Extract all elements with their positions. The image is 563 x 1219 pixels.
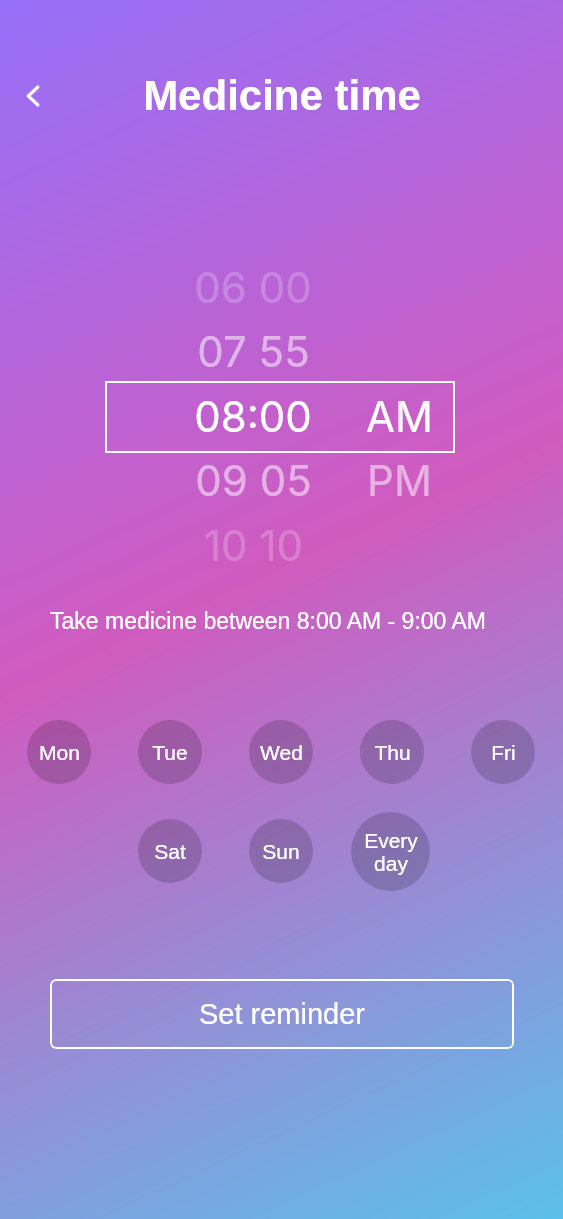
staticText: Every [364,829,418,852]
button[interactable]: Mon [27,720,91,784]
staticText: AM [366,391,433,442]
staticText: Fri [491,741,516,764]
button[interactable]: Back [10,72,58,120]
staticText: Tue [152,741,188,764]
staticText: PM [367,455,432,506]
staticText: day [374,852,408,875]
staticText: 10 10 [204,520,303,571]
staticText: 08:00 [194,391,312,442]
button[interactable]: Set reminder [50,979,514,1049]
button[interactable]: Thu [360,720,424,784]
button[interactable]: Fri [471,720,535,784]
staticText: Wed [260,741,303,764]
button[interactable]: Wed [249,720,313,784]
staticText: 06 00 [194,262,312,313]
staticText: Sun [262,840,300,863]
button[interactable]: Every [351,812,430,891]
button[interactable]: Sat [138,819,202,883]
button[interactable] [105,381,455,453]
staticText: 09 05 [195,455,312,506]
staticText: Take medicine between 8:00 AM - 9:00 AM [50,608,486,634]
staticText: Medicine time [143,72,421,118]
staticText: Set reminder [199,998,366,1030]
button[interactable]: Sun [249,819,313,883]
staticText: Thu [374,741,411,764]
staticText: Mon [39,741,80,764]
staticText: 07 55 [197,326,310,377]
button[interactable]: Tue [138,720,202,784]
staticText: Sat [154,840,186,863]
